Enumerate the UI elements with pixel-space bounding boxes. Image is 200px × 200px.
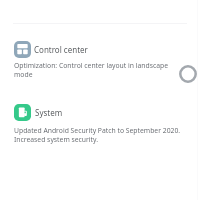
button[interactable]: System (0, 97, 200, 149)
staticText: Updated Android Security Patch to Septem… (14, 126, 190, 144)
staticText: Control center (34, 44, 88, 55)
button[interactable]: Control center (0, 34, 200, 84)
staticText: System (35, 107, 63, 118)
button[interactable]: Select Control center update (178, 64, 198, 84)
staticText: Optimization: Control center layout in l… (14, 61, 174, 79)
